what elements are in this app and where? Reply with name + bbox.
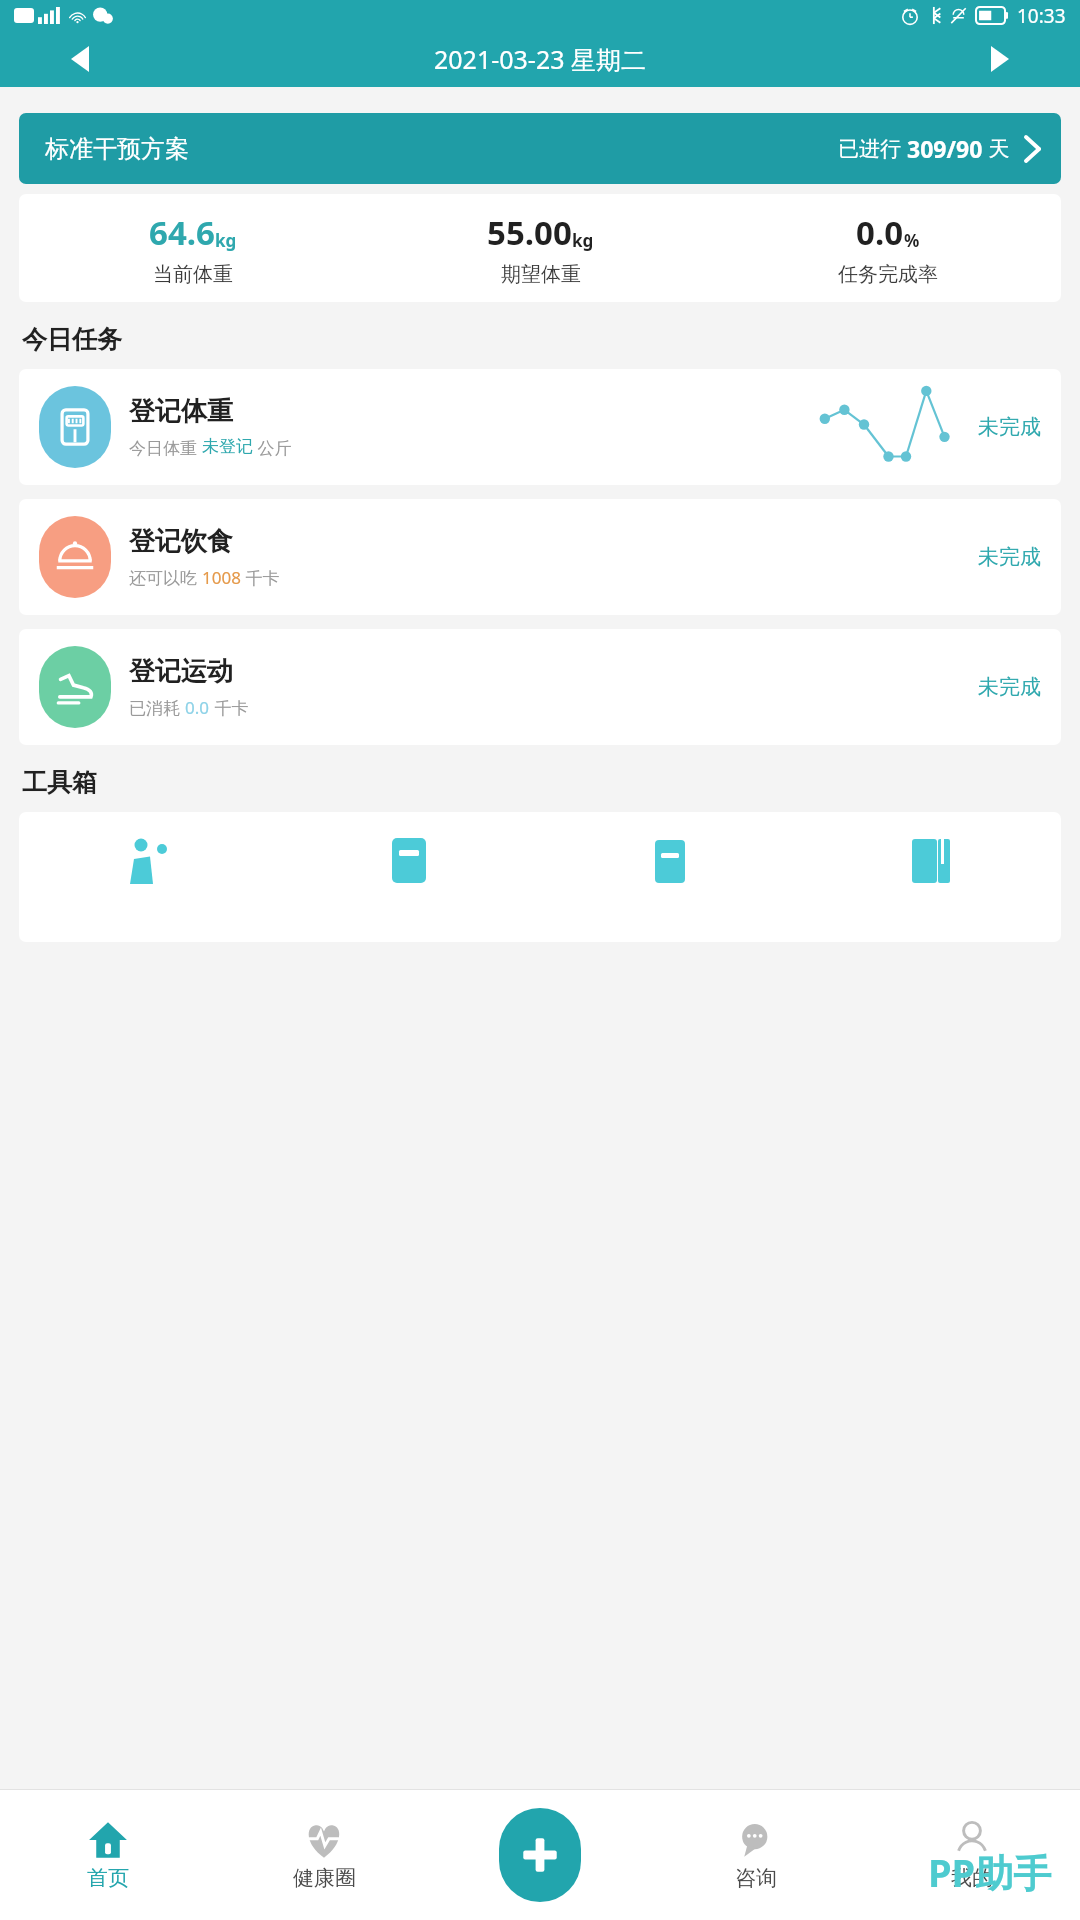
staticText: 未登记 bbox=[202, 436, 253, 457]
button[interactable]: 登记饮食 bbox=[19, 499, 1061, 615]
staticText: 已进行 bbox=[838, 134, 907, 163]
staticText: 当前体重 bbox=[153, 262, 233, 287]
staticText: 登记运动 bbox=[129, 655, 233, 688]
staticText: 千卡 bbox=[241, 566, 280, 589]
staticText: kg bbox=[572, 229, 594, 252]
button[interactable]: 55.00 bbox=[367, 210, 714, 287]
button[interactable]: 登记体重 bbox=[19, 369, 1061, 485]
button[interactable]: Body fat bbox=[19, 812, 279, 942]
button[interactable]: 标准干预方案 bbox=[19, 113, 1061, 184]
staticText: 1008 bbox=[202, 566, 241, 589]
button[interactable]: 首页 bbox=[0, 1790, 216, 1920]
staticText: 咨询 bbox=[735, 1865, 777, 1891]
button[interactable]: 登记运动 bbox=[19, 629, 1061, 745]
staticText: 0.0 bbox=[856, 210, 904, 255]
staticText: 309/90 bbox=[907, 133, 983, 164]
staticText: 登记饮食 bbox=[129, 525, 233, 558]
staticText: 未完成 bbox=[978, 414, 1041, 440]
staticText: 公斤 bbox=[253, 436, 292, 459]
staticText: 0.0 bbox=[185, 696, 210, 719]
button[interactable]: Add record bbox=[499, 1808, 581, 1902]
staticText: 千卡 bbox=[210, 696, 249, 719]
button[interactable]: Record bbox=[279, 812, 539, 942]
staticText: 健康圈 bbox=[293, 1865, 356, 1891]
staticText: 2021-03-23 星期二 bbox=[100, 42, 980, 76]
staticText: 标准干预方案 bbox=[45, 134, 189, 164]
button[interactable]: 0.0 bbox=[714, 210, 1061, 287]
staticText: 10:33 bbox=[1017, 3, 1066, 29]
staticText: 今日任务 bbox=[22, 324, 122, 355]
staticText: % bbox=[904, 229, 920, 252]
staticText: 天 bbox=[983, 134, 1010, 163]
staticText: 工具箱 bbox=[22, 767, 97, 798]
staticText: 还可以吃 bbox=[129, 566, 202, 589]
staticText: 已消耗 bbox=[129, 696, 185, 719]
staticText: PP助手 bbox=[928, 1846, 1052, 1898]
button[interactable]: 健康圈 bbox=[216, 1790, 432, 1920]
staticText: kg bbox=[215, 229, 237, 252]
button[interactable]: 我的 bbox=[864, 1790, 1080, 1920]
staticText: 55.00 bbox=[487, 210, 572, 255]
button[interactable]: Next day bbox=[980, 39, 1020, 79]
staticText: 未完成 bbox=[978, 674, 1041, 700]
button[interactable]: Previous day bbox=[60, 39, 100, 79]
button[interactable]: 咨询 bbox=[648, 1790, 864, 1920]
button[interactable]: Library bbox=[800, 812, 1061, 942]
staticText: 64.6 bbox=[149, 210, 215, 255]
staticText: 我的 bbox=[951, 1865, 993, 1891]
staticText: 登记体重 bbox=[129, 395, 233, 428]
staticText: 未完成 bbox=[978, 544, 1041, 570]
button[interactable]: 64.6 bbox=[19, 210, 367, 287]
staticText: 今日体重 bbox=[129, 436, 202, 459]
button[interactable]: Report bbox=[539, 812, 800, 942]
staticText: 首页 bbox=[87, 1865, 129, 1891]
staticText: 期望体重 bbox=[501, 262, 581, 287]
staticText: 任务完成率 bbox=[838, 262, 938, 287]
